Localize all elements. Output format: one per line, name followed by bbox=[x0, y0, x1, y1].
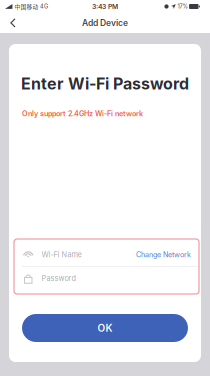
staticText: Add Device bbox=[82, 18, 128, 28]
staticText: 中国移动 bbox=[14, 2, 38, 11]
button[interactable]: Change Network bbox=[136, 250, 191, 259]
staticText: 3:43 PM bbox=[92, 2, 118, 11]
button[interactable]: Back bbox=[4, 14, 22, 32]
staticText: OK bbox=[97, 322, 112, 334]
staticText: Password bbox=[41, 274, 75, 283]
staticText: Wi-Fi Name bbox=[41, 250, 81, 259]
staticText: Enter Wi-Fi Password bbox=[21, 74, 189, 93]
staticText: 17% bbox=[177, 3, 187, 10]
staticText: Change Network bbox=[136, 250, 191, 259]
button[interactable]: OK bbox=[22, 314, 188, 342]
staticText: 4G bbox=[40, 3, 48, 10]
staticText: Only support 2.4GHz Wi-Fi network bbox=[22, 109, 143, 118]
